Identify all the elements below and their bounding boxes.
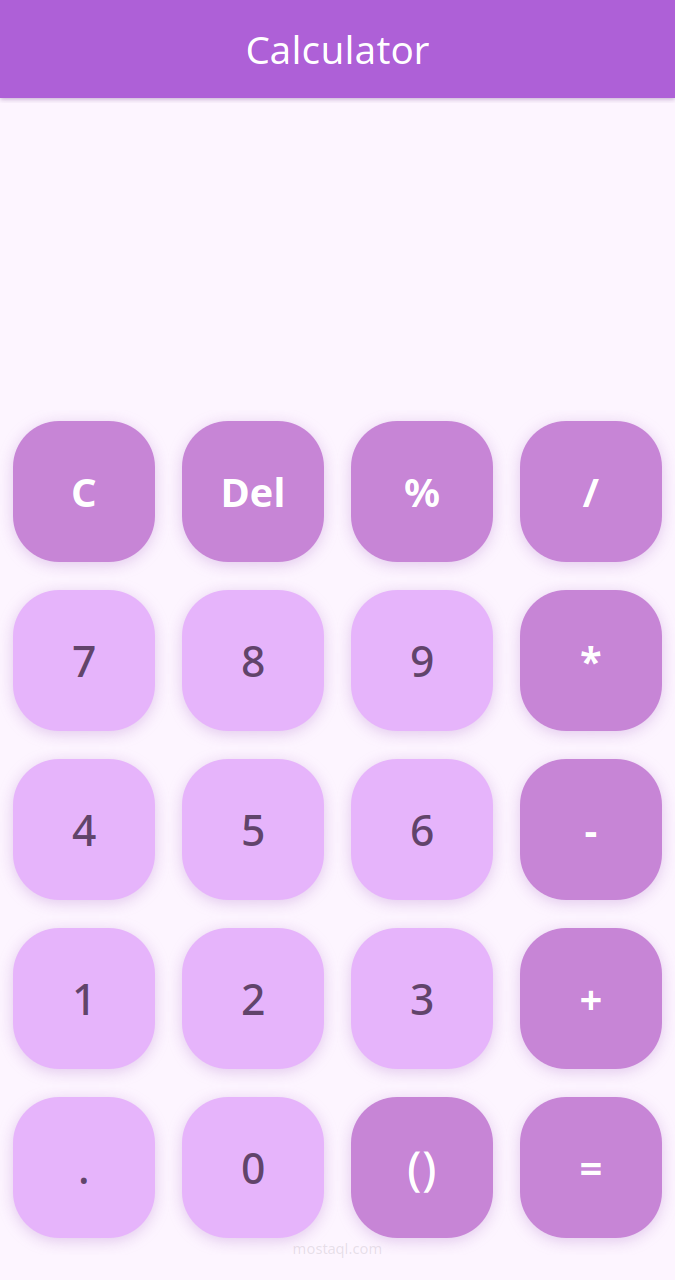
staticText: 9 [410, 632, 434, 689]
button[interactable]: 5 [182, 759, 324, 900]
button[interactable]: 7 [13, 590, 155, 731]
button[interactable]: + [520, 928, 662, 1069]
staticText: 5 [241, 801, 265, 858]
button[interactable]: * [520, 590, 662, 731]
button[interactable]: 8 [182, 590, 324, 731]
staticText: . [78, 1139, 90, 1196]
staticText: 3 [410, 970, 434, 1027]
staticText: 1 [72, 970, 96, 1027]
button[interactable]: 0 [182, 1097, 324, 1238]
button[interactable]: % [351, 421, 493, 562]
button[interactable]: 1 [13, 928, 155, 1069]
button[interactable]: 6 [351, 759, 493, 900]
staticText: * [580, 634, 602, 687]
staticText: 0 [241, 1139, 265, 1196]
staticText: 2 [241, 970, 265, 1027]
button[interactable]: / [520, 421, 662, 562]
staticText: 6 [410, 801, 434, 858]
button[interactable]: 4 [13, 759, 155, 900]
staticText: 4 [72, 801, 96, 858]
staticText: () [407, 1136, 437, 1198]
button[interactable]: () [351, 1097, 493, 1238]
button[interactable]: Del [182, 421, 324, 562]
button[interactable]: 9 [351, 590, 493, 731]
staticText: + [579, 972, 602, 1025]
staticText: Calculator [245, 23, 429, 75]
staticText: mostaql.com [292, 1238, 382, 1258]
button[interactable]: - [520, 759, 662, 900]
staticText: / [582, 465, 599, 518]
button[interactable]: C [13, 421, 155, 562]
button[interactable]: . [13, 1097, 155, 1238]
staticText: 7 [72, 632, 96, 689]
staticText: C [71, 465, 97, 518]
staticText: % [404, 465, 440, 518]
staticText: = [579, 1141, 602, 1194]
staticText: - [584, 803, 597, 856]
button[interactable]: 2 [182, 928, 324, 1069]
staticText: Del [220, 465, 285, 518]
button[interactable]: 3 [351, 928, 493, 1069]
button[interactable]: = [520, 1097, 662, 1238]
staticText: 8 [241, 632, 265, 689]
